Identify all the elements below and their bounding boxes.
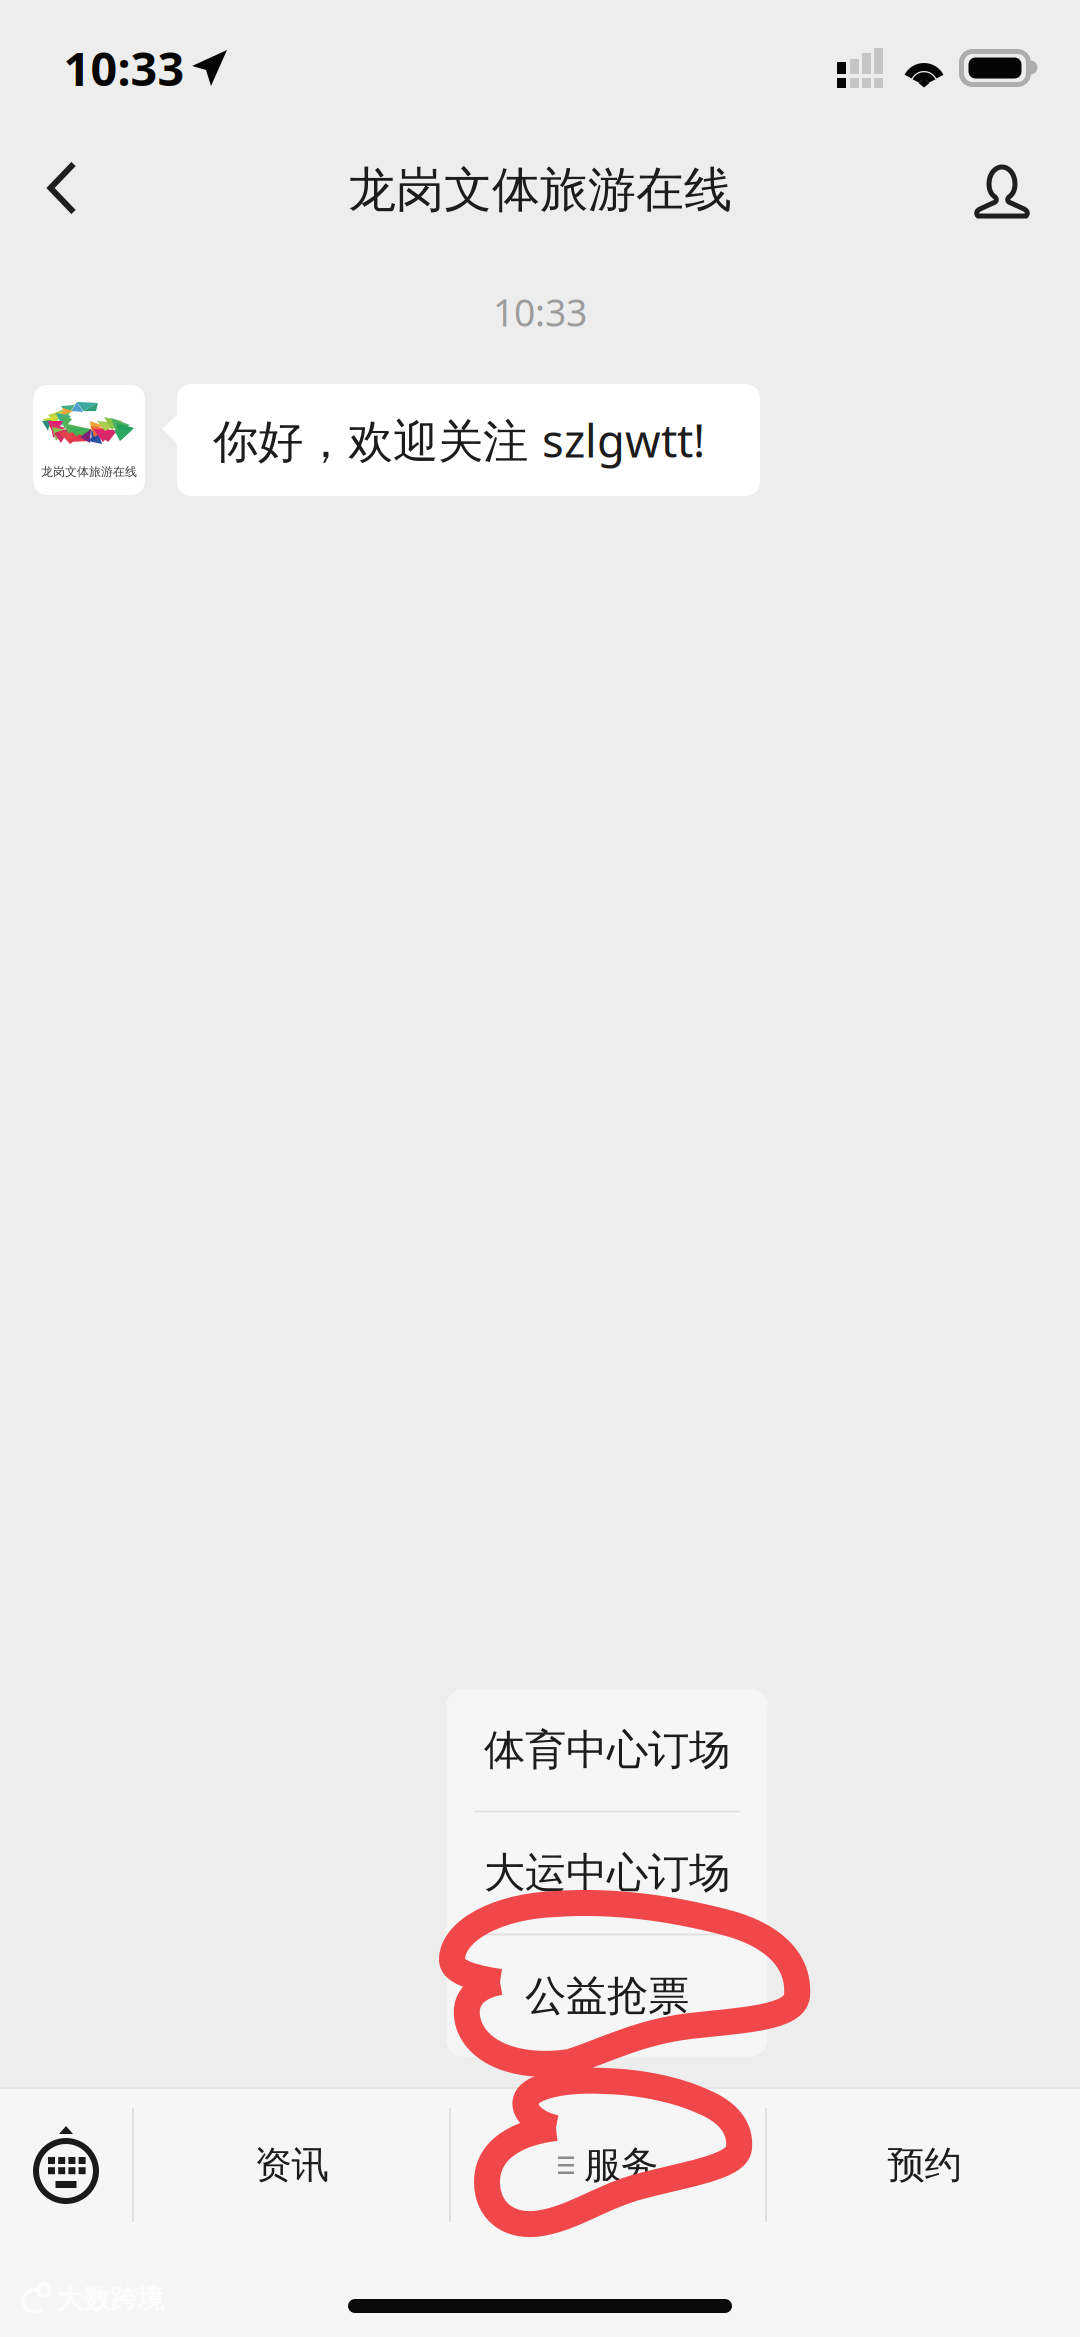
button[interactable]: Back [7,128,117,248]
button[interactable]: Profile [947,130,1057,250]
button[interactable]: 公益抢票 [446,1935,767,2056]
staticText: 预约 [887,2142,961,2188]
button[interactable]: 服务 [451,2088,765,2241]
staticText: 公益抢票 [525,1971,689,2021]
staticText: 资讯 [254,2142,328,2188]
staticText: 龙岗文体旅游在线 [41,464,137,479]
button[interactable]: Keyboard [0,2088,132,2241]
button[interactable]: 资讯 [134,2088,449,2241]
button[interactable]: 体育中心订场 [446,1689,767,1810]
staticText: 服务 [584,2142,658,2188]
staticText: 体育中心订场 [484,1725,730,1775]
staticText: 龙岗文体旅游在线 [348,160,732,219]
button[interactable]: 大运中心订场 [446,1812,767,1933]
staticText: 你好，欢迎关注 szlgwtt! [213,410,705,470]
staticText: 大运中心订场 [484,1848,730,1898]
staticText: 10:33 [493,287,587,337]
staticText: 10:33 [63,37,184,99]
button[interactable]: 预约 [767,2088,1080,2241]
